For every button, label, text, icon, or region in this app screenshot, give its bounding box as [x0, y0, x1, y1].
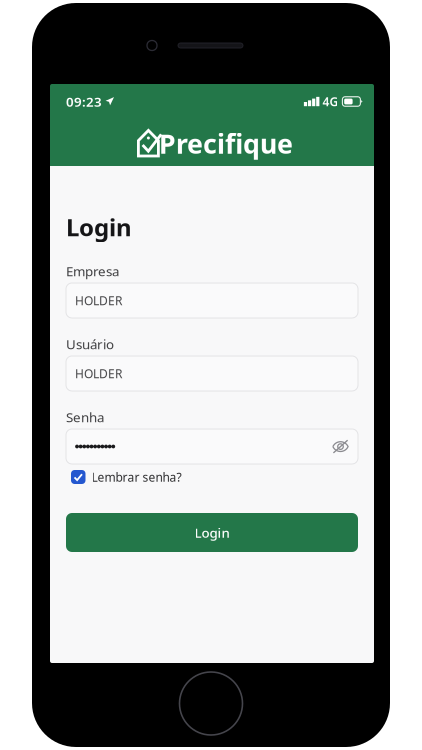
staticText: Empresa — [66, 262, 119, 280]
staticText: Precifique — [159, 126, 293, 161]
staticText: HOLDER — [75, 365, 122, 381]
staticText: Login — [66, 211, 132, 243]
staticText: Usuário — [66, 335, 114, 353]
staticText: Lembrar senha? — [91, 469, 181, 485]
staticText: Login — [194, 524, 229, 541]
button[interactable]: Mostrar senha — [332, 439, 349, 454]
staticText: 4G — [322, 93, 338, 109]
staticText: HOLDER — [75, 292, 122, 308]
staticText: 09:23 — [66, 93, 102, 110]
staticText: Senha — [66, 408, 104, 426]
button[interactable]: Lembrar senha? — [66, 467, 358, 487]
button[interactable]: Login — [66, 513, 358, 552]
